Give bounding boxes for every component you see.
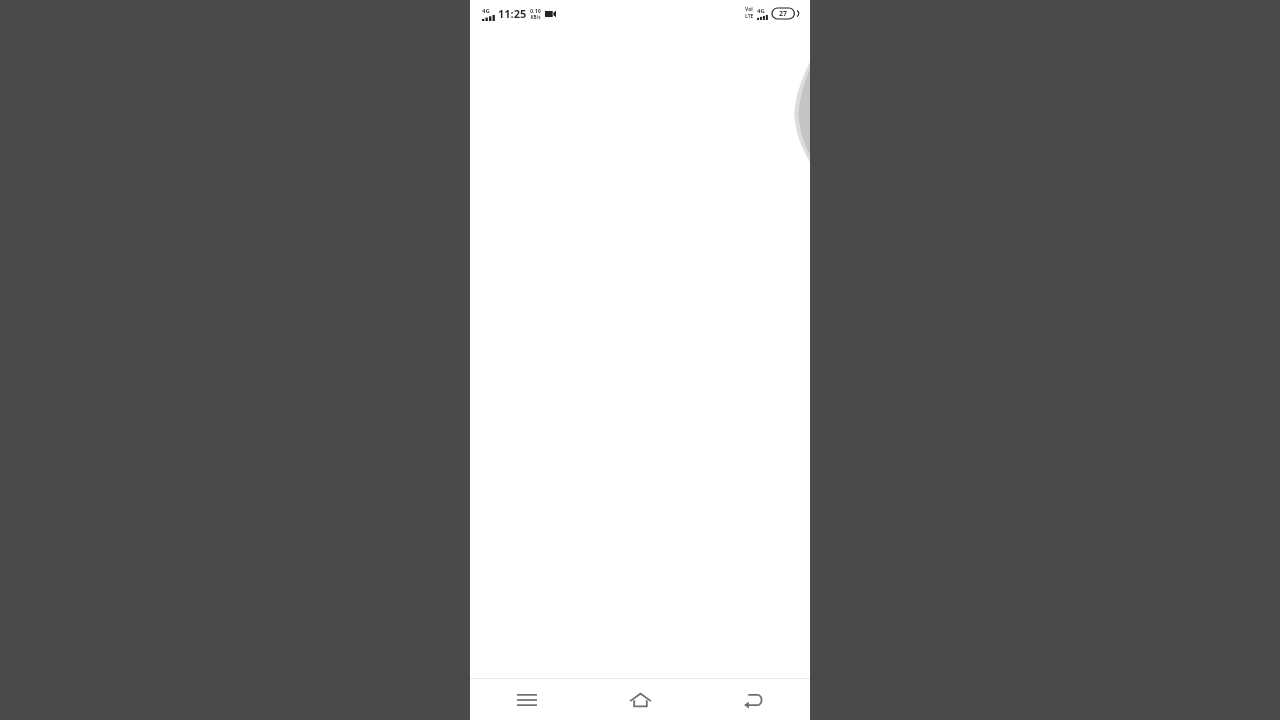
button[interactable]: Recent apps	[470, 679, 584, 720]
staticText: KB/s	[530, 14, 541, 20]
staticText: 4G	[757, 7, 765, 15]
staticText: 11:25	[498, 6, 527, 21]
button[interactable]: Home	[584, 679, 697, 720]
staticText: 27	[779, 9, 788, 19]
staticText: 4G	[482, 7, 490, 15]
staticText: Vol	[745, 6, 753, 13]
staticText: 0.10	[530, 7, 541, 14]
button[interactable]: Back	[697, 679, 810, 720]
staticText: LTE	[745, 13, 754, 20]
